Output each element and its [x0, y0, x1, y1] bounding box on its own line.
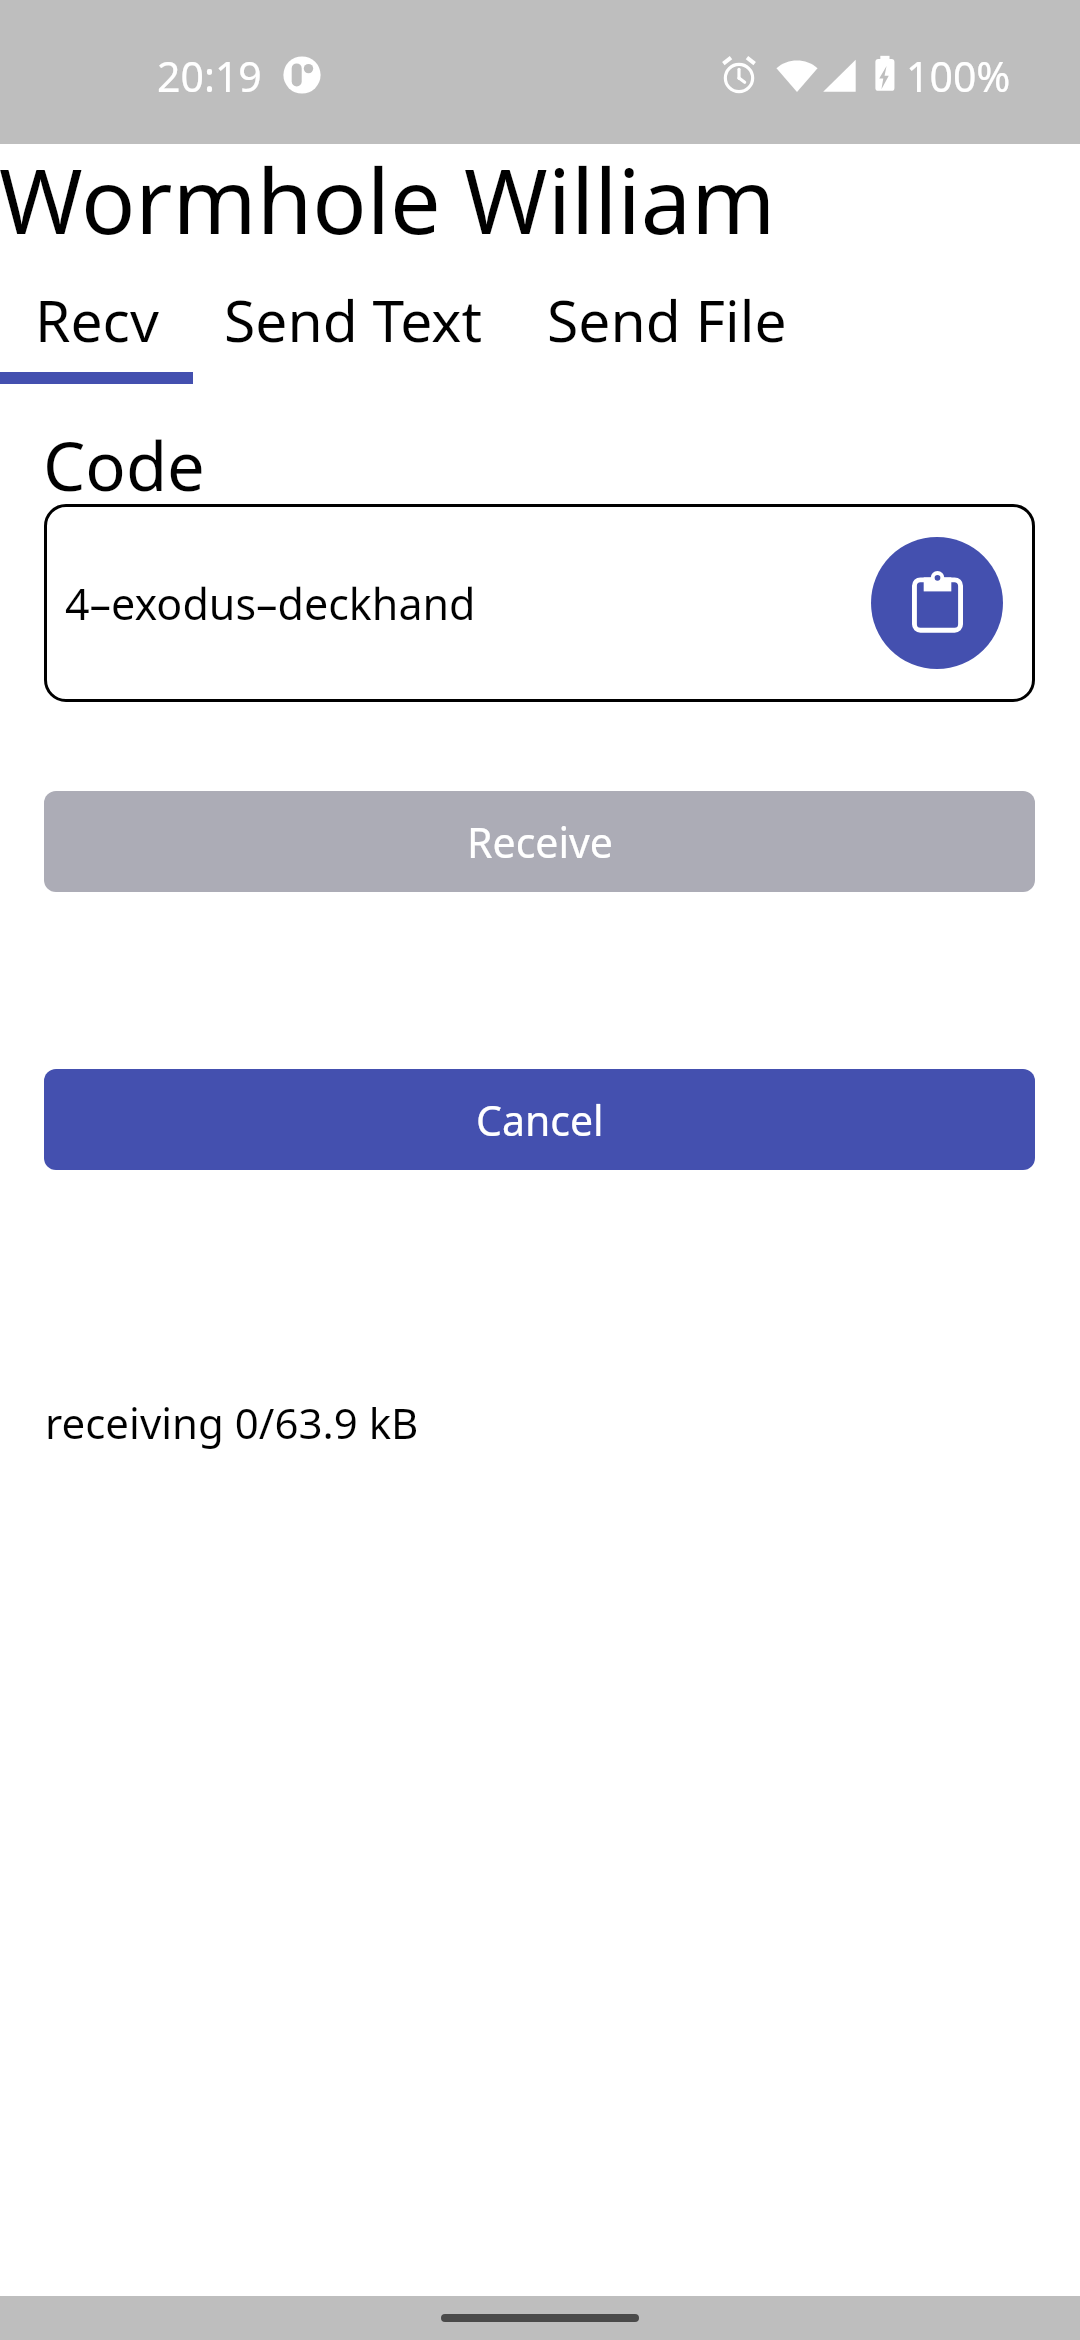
button[interactable]: Cancel: [44, 1069, 1035, 1170]
staticText: Send Text: [224, 281, 482, 359]
staticText: Receive: [467, 814, 613, 870]
button[interactable]: Paste code from clipboard: [871, 537, 1003, 669]
staticText: 20:19: [157, 48, 262, 104]
staticText: 100%: [906, 48, 1011, 104]
staticText: Code: [43, 419, 205, 510]
button[interactable]: Recv: [0, 280, 193, 384]
button[interactable]: Send Text: [193, 280, 513, 384]
button[interactable]: 4–exodus–deckhand: [44, 504, 1035, 702]
other: Battery charging: [862, 54, 906, 98]
staticText: Wormhole William: [0, 138, 776, 261]
other: Mobile signal: [819, 56, 859, 96]
staticText: Recv: [35, 281, 159, 359]
other: Notification: [283, 56, 321, 94]
button[interactable]: Receive: [44, 791, 1035, 892]
other: Wi-Fi: [775, 55, 819, 99]
staticText: Send File: [547, 281, 787, 359]
staticText: Cancel: [476, 1092, 604, 1148]
button[interactable]: Send File: [513, 280, 820, 384]
staticText: 4–exodus–deckhand: [65, 574, 476, 633]
other: Alarm set: [719, 55, 759, 95]
staticText: receiving 0/63.9 kB: [45, 1394, 419, 1451]
